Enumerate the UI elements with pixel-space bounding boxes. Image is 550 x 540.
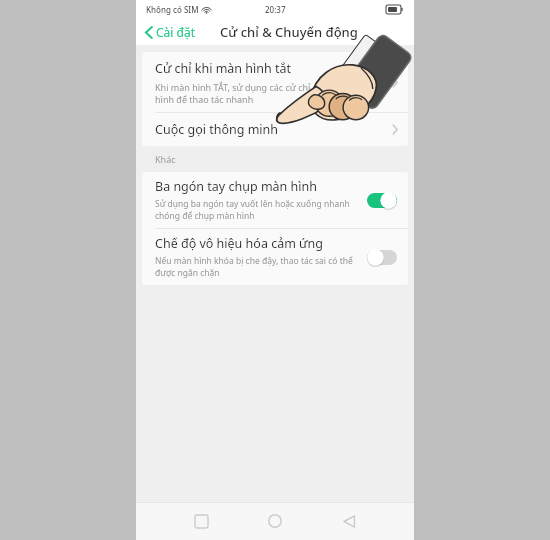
staticText: Cài đặt <box>156 24 196 40</box>
staticText: hình để thao tác nhanh <box>155 93 254 105</box>
staticText: Ba ngón tay chụp màn hình <box>155 178 317 195</box>
button[interactable]: Back <box>334 506 364 536</box>
button[interactable]: Toggle on <box>367 192 397 209</box>
button[interactable]: Home <box>260 506 290 536</box>
staticText: được ngăn chặn <box>155 267 220 279</box>
button[interactable]: Cài đặt <box>136 20 204 44</box>
staticText: Khi màn hình TẮT, sử dụng các cử chỉ màn <box>155 81 332 93</box>
staticText: 20:37 <box>265 4 286 15</box>
staticText: Sử dụng ba ngón tay vuốt lên hoặc xuống … <box>155 198 350 210</box>
staticText: Khác <box>155 153 176 165</box>
staticText: Cử chỉ khi màn hình tắt <box>155 60 292 77</box>
button[interactable]: Cuộc gọi thông minh <box>142 113 408 146</box>
staticText: Cuộc gọi thông minh <box>155 121 392 138</box>
button[interactable]: Toggle off <box>367 249 397 266</box>
staticText: Cử chỉ & Chuyển động <box>220 23 358 41</box>
staticText: chóng để chụp màn hình <box>155 210 255 222</box>
button[interactable]: Chế độ vô hiệu hóa cảm ứng <box>142 229 408 285</box>
staticText: Chế độ vô hiệu hóa cảm ứng <box>155 235 323 252</box>
button[interactable]: Ba ngón tay chụp màn hình <box>142 172 408 228</box>
staticText: Nếu màn hình khóa bị che đậy, thao tác s… <box>155 255 353 267</box>
button[interactable]: Cử chỉ khi màn hình tắt <box>142 52 408 112</box>
button[interactable]: Recent apps <box>186 506 216 536</box>
staticText: Không có SIM <box>146 4 199 15</box>
